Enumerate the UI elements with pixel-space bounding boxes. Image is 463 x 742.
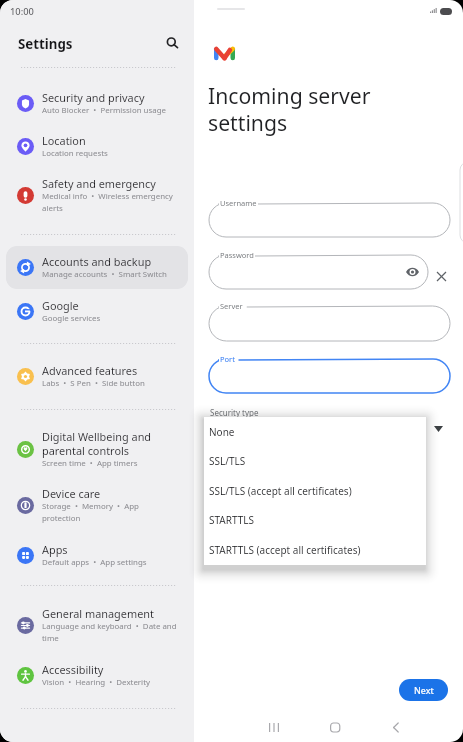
staticText: Accessibility [42,662,190,677]
button[interactable]: Search [158,28,185,55]
staticText: None [209,425,235,439]
staticText: Language and keyboard • Date and time [42,621,190,643]
staticText: Safety and emergency [42,176,190,191]
staticText: Labs • S Pen • Side button [42,378,190,389]
staticText: STARTTLS (accept all certificates) [209,543,361,557]
button[interactable] [6,125,188,168]
staticText: Auto Blocker • Permission usage [42,105,190,116]
staticText: SSL/TLS (accept all certificates) [209,484,352,498]
staticText: Advanced features [42,363,190,378]
button[interactable]: None [204,417,426,446]
staticText: Medical info • Wireless emergency alerts [42,191,190,213]
staticText: Default apps • App settings [42,557,190,568]
button[interactable]: Home [321,713,349,741]
staticText: Screen time • App timers [42,458,190,469]
staticText: Server [220,301,243,311]
staticText: Digital Wellbeing and parental controls [42,429,190,458]
button[interactable] [6,355,188,398]
staticText: Location requests [42,148,190,159]
button[interactable] [6,478,188,532]
button[interactable] [6,598,188,652]
button[interactable] [6,246,188,289]
staticText: Security and privacy [42,90,190,105]
button[interactable]: Back [382,713,410,741]
staticText: Storage • Memory • App protection [42,501,190,523]
button[interactable]: Show password [403,263,421,281]
button[interactable]: Password [209,255,428,289]
staticText: Location [42,133,190,148]
staticText: Vision • Hearing • Dexterity [42,677,190,688]
staticText: Device care [42,486,190,501]
button[interactable] [6,654,188,697]
button[interactable]: Clear [433,268,449,284]
staticText: SSL/TLS [209,454,246,468]
button[interactable] [6,82,188,125]
button[interactable]: STARTTLS [204,505,426,534]
staticText: Manage accounts • Smart Switch [42,269,190,280]
staticText: General management [42,606,190,621]
button[interactable] [6,290,188,333]
button[interactable]: SSL/TLS [204,446,426,475]
staticText: Settings [18,35,73,53]
staticText: Google services [42,313,190,324]
staticText: Google [42,298,190,313]
staticText: Password [220,250,254,260]
staticText: Username [220,198,257,208]
button[interactable]: Username [209,203,450,237]
staticText: Port [220,354,235,364]
button[interactable]: Server [209,306,450,341]
staticText: Accounts and backup [42,254,190,269]
button[interactable]: Recent apps [260,713,288,741]
staticText: 10:00 [10,5,34,18]
button[interactable]: Next [399,679,448,701]
staticText: Apps [42,542,190,557]
button[interactable] [6,168,188,222]
button[interactable]: STARTTLS (accept all certificates) [204,535,426,564]
staticText: Next [414,684,434,696]
staticText: STARTTLS [209,513,255,527]
button[interactable] [6,534,188,577]
staticText: Incoming server settings [208,81,371,138]
button[interactable]: Port [209,359,450,393]
button[interactable] [6,421,188,478]
button[interactable]: SSL/TLS (accept all certificates) [204,476,426,505]
staticText: Security type [210,407,259,418]
